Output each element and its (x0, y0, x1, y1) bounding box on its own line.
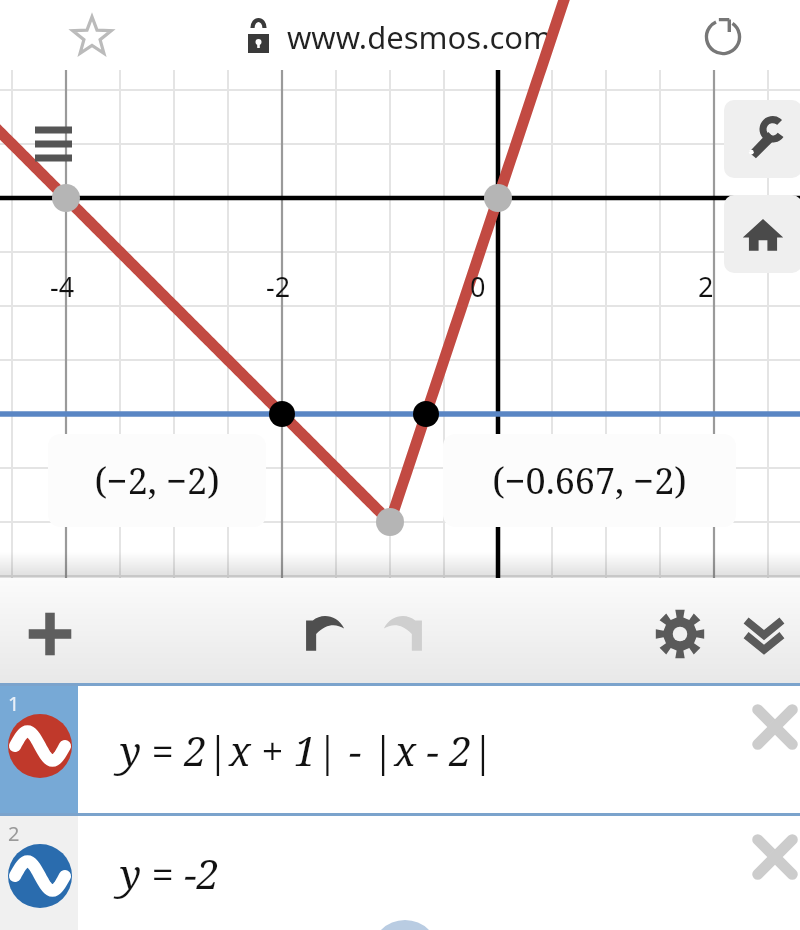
staticText: y = −2 (120, 846, 220, 900)
staticText: www.desmos.com (287, 16, 553, 58)
staticText: (−0.667, −2) (492, 456, 687, 505)
button[interactable]: (−0.667, −2) (443, 434, 736, 527)
staticText: -2 (266, 268, 291, 305)
staticText: -4 (50, 268, 75, 305)
button[interactable]: Settings (724, 100, 800, 178)
staticText: 1 (8, 690, 20, 717)
button[interactable]: www.desmos.com (240, 12, 580, 60)
button[interactable]: 2 (0, 816, 800, 930)
button[interactable]: Delete expression 2 (748, 830, 800, 884)
button[interactable]: Home (724, 195, 800, 273)
button[interactable]: Undo (296, 606, 352, 662)
staticText: y = 2|x + 1| − |x − 2| (120, 723, 495, 777)
button[interactable]: Bookmark (70, 14, 114, 58)
button[interactable]: Reload (700, 12, 746, 58)
button[interactable]: 1 (0, 686, 800, 813)
button[interactable]: Delete expression 1 (748, 700, 800, 754)
button[interactable]: (−2, −2) (48, 434, 266, 527)
staticText: 2 (698, 268, 714, 305)
button[interactable]: Menu (30, 118, 78, 166)
staticText: 0 (470, 268, 486, 305)
button[interactable]: Add expression (22, 606, 78, 662)
staticText: (−2, −2) (94, 456, 220, 505)
button[interactable]: Collapse (736, 606, 792, 662)
button[interactable]: Graph settings (652, 606, 708, 662)
staticText: 2 (8, 820, 20, 847)
button[interactable]: Redo (376, 606, 432, 662)
